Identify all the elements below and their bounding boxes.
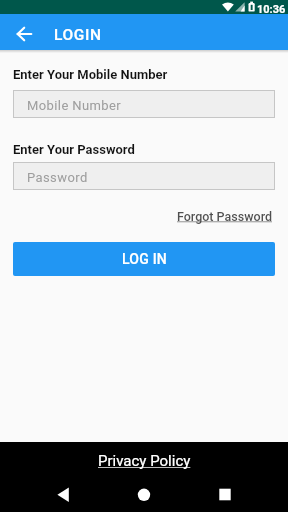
button[interactable] (43, 480, 83, 508)
staticText: Mobile Number (27, 98, 122, 113)
staticText: LOGIN (54, 26, 102, 44)
staticText: Enter Your Password (13, 142, 135, 157)
button[interactable]: Mobile Number (13, 90, 275, 118)
button[interactable]: Password (13, 162, 275, 190)
button[interactable]: Forgot Password (177, 209, 275, 224)
staticText: 10:36 (257, 3, 286, 16)
button[interactable]: Privacy Policy (98, 452, 191, 470)
staticText: LOG IN (122, 251, 167, 267)
staticText: Enter Your Mobile Number (13, 67, 168, 82)
button[interactable]: LOG IN (13, 242, 275, 276)
button[interactable] (0, 14, 50, 50)
staticText: Password (27, 170, 88, 185)
button[interactable] (205, 480, 245, 508)
button[interactable] (124, 480, 164, 508)
